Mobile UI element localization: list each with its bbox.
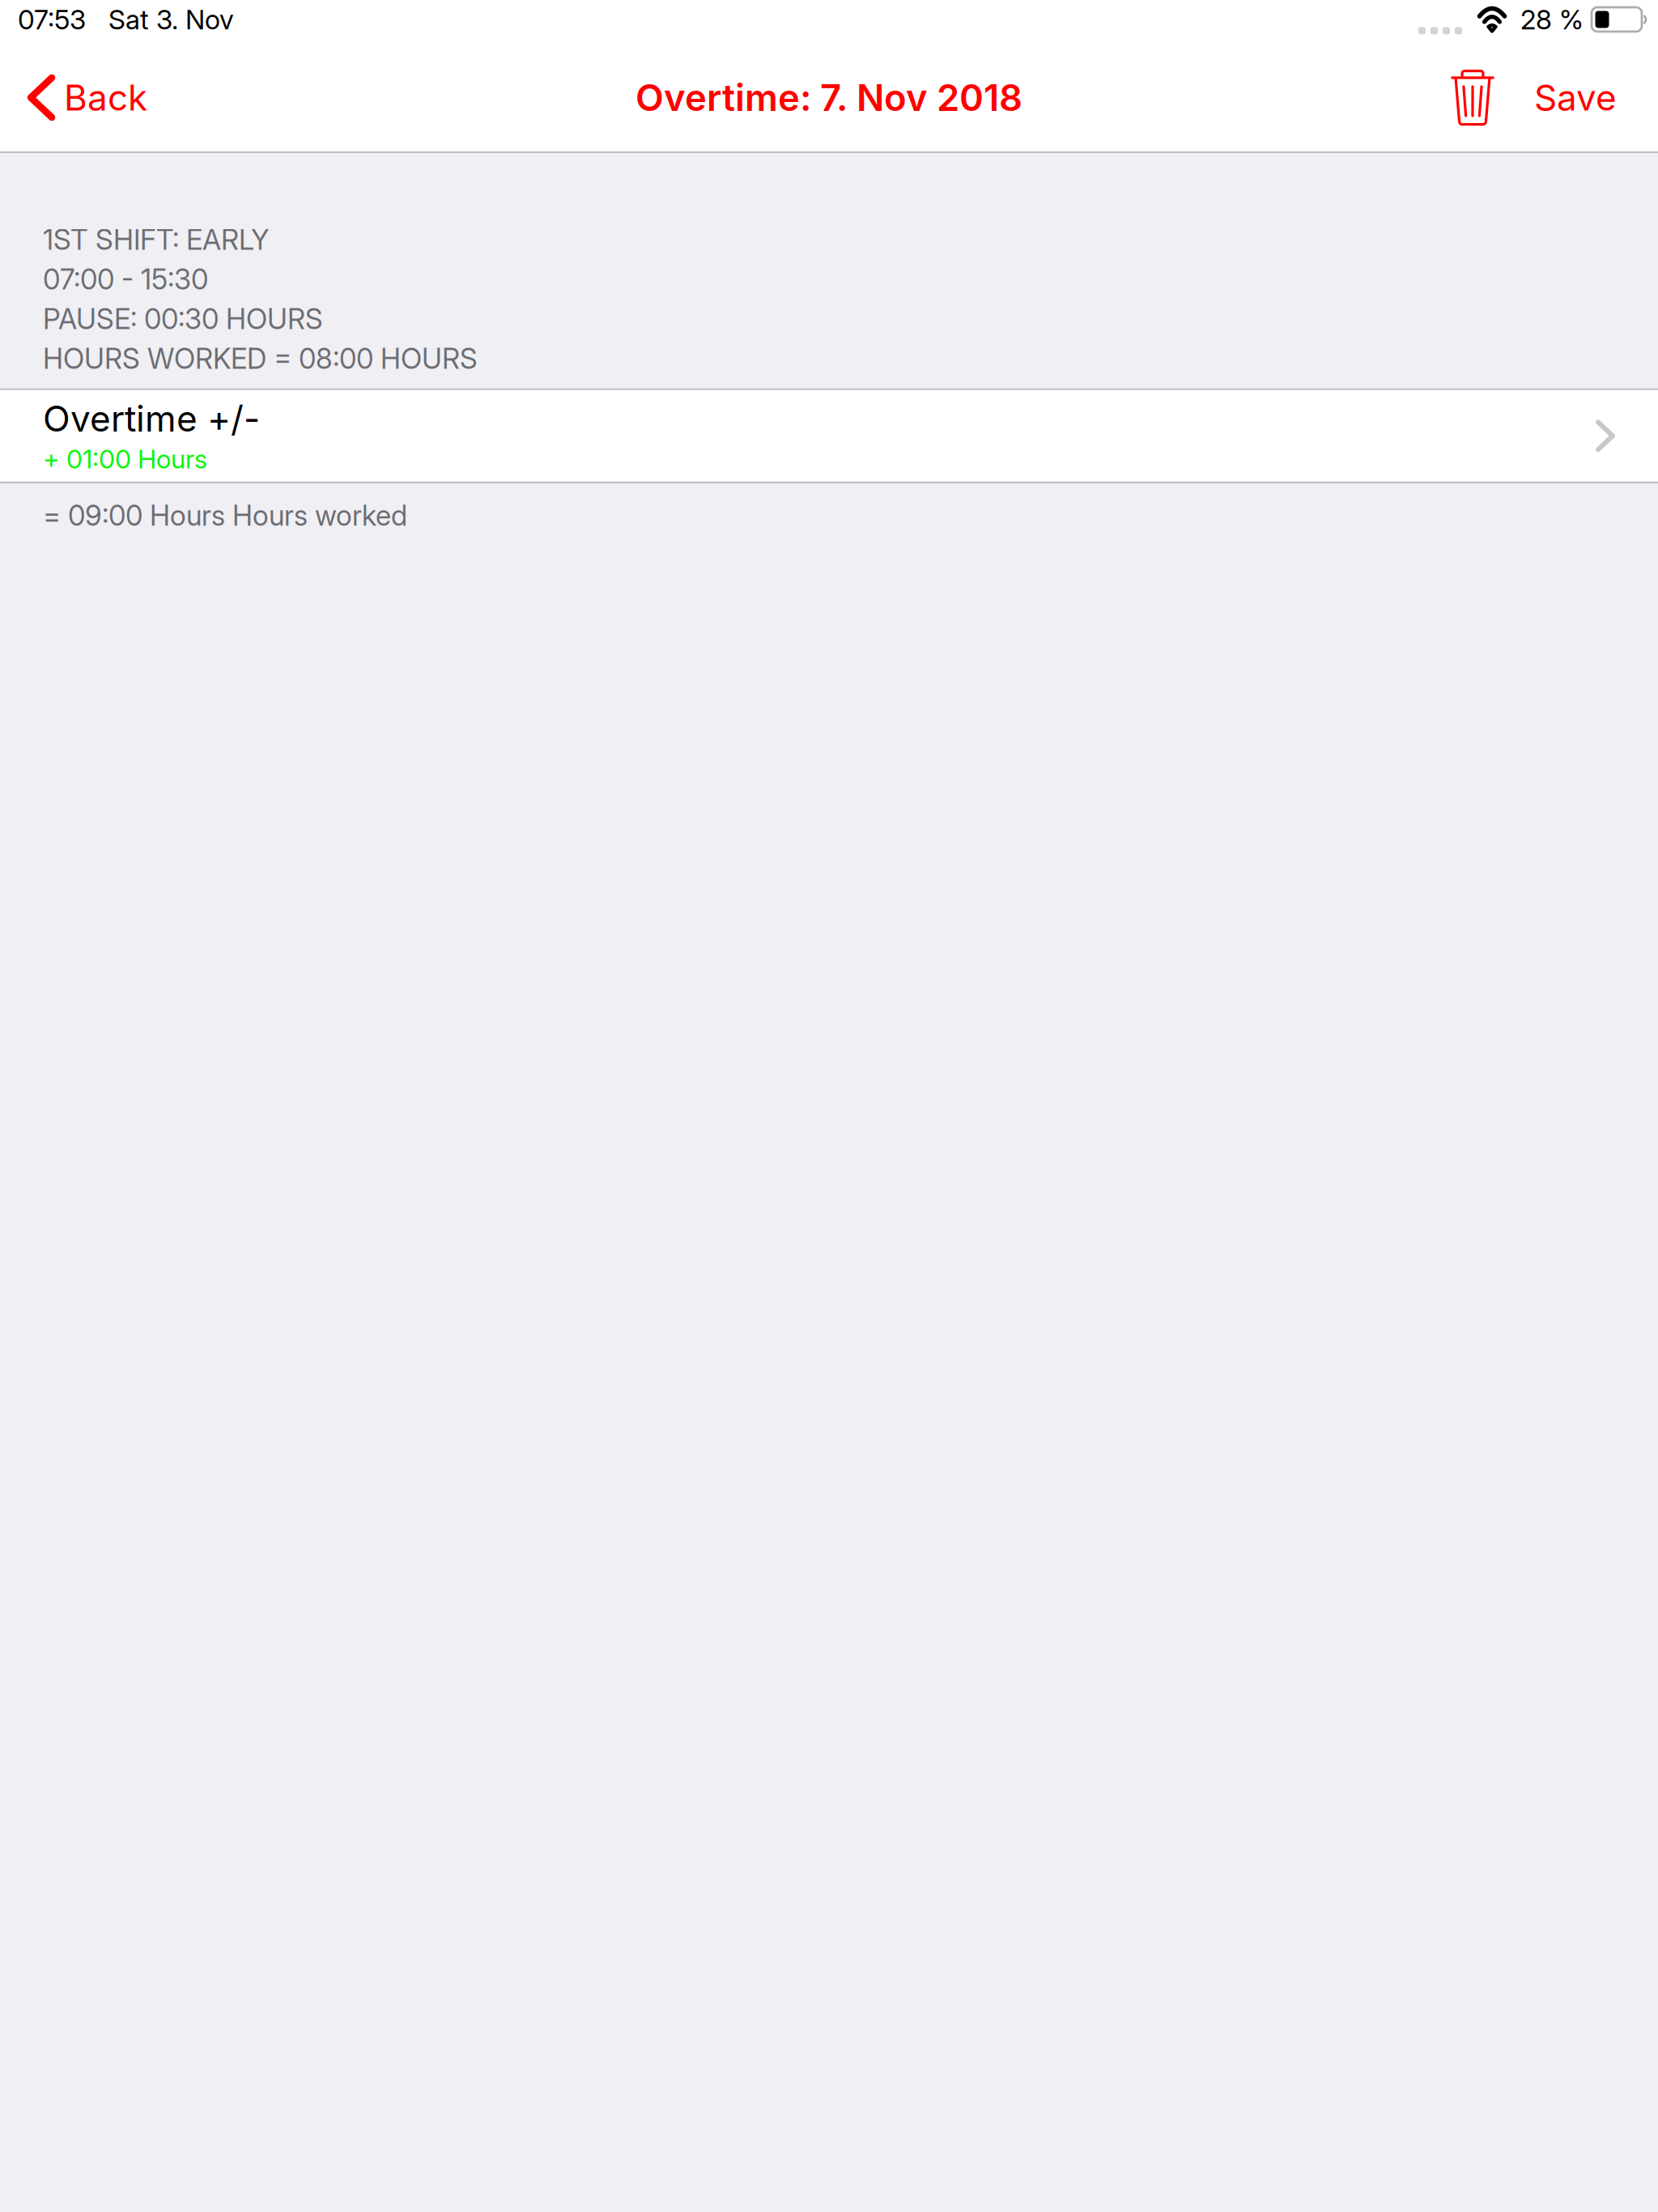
staticText: Overtime +/- (43, 397, 260, 440)
staticText: 07:00 - 15:30 (43, 262, 208, 296)
staticText: Save (1534, 76, 1617, 119)
button[interactable]: Overtime +/- (0, 390, 1658, 482)
staticText: 28 % (1520, 3, 1584, 36)
staticText: Back (64, 76, 147, 119)
staticText: 1ST SHIFT: EARLY (43, 223, 270, 257)
staticText: + 01:00 Hours (43, 443, 207, 475)
staticText: Sat 3. Nov (108, 3, 234, 36)
button[interactable]: Back (0, 41, 164, 154)
button[interactable]: Save (1511, 41, 1658, 154)
staticText: 07:53 (18, 3, 86, 36)
button[interactable]: Delete (1426, 41, 1511, 154)
staticText: HOURS WORKED = 08:00 HOURS (43, 342, 478, 375)
staticText: PAUSE: 00:30 HOURS (43, 302, 323, 336)
staticText: = 09:00 Hours Hours worked (43, 499, 407, 533)
staticText: Overtime: 7. Nov 2018 (636, 75, 1022, 120)
